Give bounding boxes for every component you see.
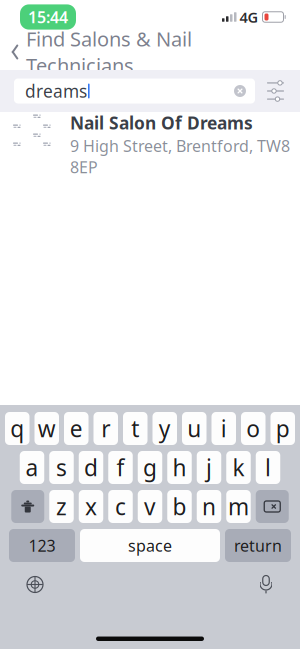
staticText: Find Salons & Nail Technicians (26, 25, 192, 78)
button[interactable]: s (49, 451, 74, 484)
staticText: 9 High Street, Brentford, TW8 8EP (70, 135, 290, 178)
button[interactable]: b (167, 490, 192, 523)
button[interactable]: c (108, 490, 133, 523)
staticText: 123 (28, 535, 55, 556)
staticText: o (246, 413, 260, 443)
staticText: c (115, 491, 126, 521)
button[interactable]: q (5, 412, 29, 445)
staticText: f (116, 452, 124, 482)
staticText: h (172, 452, 186, 482)
staticText: r (101, 413, 110, 443)
button[interactable]: m (226, 490, 251, 523)
staticText: z (56, 491, 67, 521)
staticText: x (85, 491, 97, 521)
staticText: q (10, 413, 24, 443)
button[interactable]: j (197, 451, 221, 484)
button[interactable]: f (108, 451, 133, 484)
button[interactable]: y (152, 412, 177, 445)
staticText: 15:44 (28, 6, 68, 28)
button[interactable]: h (167, 451, 192, 484)
button[interactable]: return (225, 529, 291, 562)
button[interactable]: o (241, 412, 265, 445)
staticText: t (131, 413, 139, 443)
button[interactable]: e (64, 412, 88, 445)
button[interactable]: k (226, 451, 251, 484)
button[interactable]: l (256, 451, 280, 484)
button[interactable]: v (138, 490, 162, 523)
staticText: dreams (25, 79, 87, 102)
button[interactable]: Delete (256, 490, 289, 523)
staticText: b (172, 491, 186, 521)
staticText: u (187, 413, 201, 443)
button[interactable]: t (123, 412, 147, 445)
button[interactable]: a (20, 451, 44, 484)
staticText: y (159, 413, 171, 443)
staticText: p (276, 413, 290, 443)
button[interactable]: Dictate (248, 565, 284, 604)
button[interactable]: space (80, 529, 220, 562)
staticText: a (25, 452, 38, 482)
button[interactable]: 123 (9, 529, 75, 562)
button[interactable]: g (138, 451, 162, 484)
staticText: n (202, 491, 216, 521)
staticText: w (38, 413, 56, 443)
button[interactable]: d (79, 451, 103, 484)
staticText: v (144, 491, 156, 521)
staticText: e (70, 413, 83, 443)
staticText: j (206, 452, 212, 482)
button[interactable]: n (197, 490, 221, 523)
staticText: d (84, 452, 98, 482)
staticText: l (265, 452, 271, 482)
staticText: return (234, 535, 282, 556)
button[interactable]: Filters (255, 75, 296, 106)
button[interactable]: u (182, 412, 206, 445)
button[interactable]: x (79, 490, 103, 523)
button[interactable]: p (270, 412, 295, 445)
button[interactable]: Switch keyboard (16, 565, 54, 603)
staticText: i (221, 413, 227, 443)
button[interactable]: Nail Salon Of Dreams (0, 112, 300, 168)
staticText: s (56, 452, 67, 482)
staticText: Nail Salon Of Dreams (70, 111, 253, 134)
button[interactable]: z (49, 490, 74, 523)
staticText: 4G (239, 7, 258, 27)
button[interactable]: Clear text (234, 79, 255, 103)
button[interactable]: i (211, 412, 236, 445)
staticText: space (128, 535, 172, 556)
button[interactable]: w (34, 412, 59, 445)
staticText: k (232, 452, 244, 482)
button[interactable]: r (93, 412, 118, 445)
button[interactable]: Find Salons & Nail Technicians (0, 17, 192, 86)
button[interactable]: Shift (11, 490, 44, 523)
staticText: g (143, 452, 157, 482)
staticText: m (228, 491, 249, 521)
